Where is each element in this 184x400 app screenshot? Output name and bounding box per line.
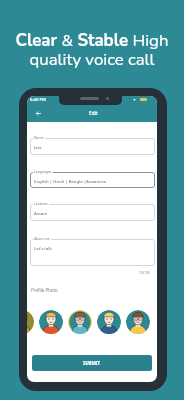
button[interactable]: Avatar 2 [39,310,63,334]
button[interactable] [30,204,155,221]
staticText: English | Hindi | Bangla |Assamese [34,178,107,184]
button[interactable]: Back [27,105,49,122]
button[interactable]: SUBMIT [32,355,152,371]
staticText: Clear & Stable High quality voice call [6,29,178,71]
staticText: Let's talk [34,245,52,251]
staticText: Jeet [34,144,42,150]
staticText: About me [34,236,50,241]
staticText: Name [34,135,44,140]
staticText: 10/100 [139,270,150,275]
button[interactable]: Avatar 3 [68,310,92,334]
staticText: SUBMIT [83,360,101,366]
staticText: Profile Photo [31,287,58,293]
staticText: 6:40 PM [30,97,46,103]
button[interactable]: Avatar 5 [126,310,150,334]
staticText: Languages [34,169,52,174]
button[interactable]: Avatar 4 [97,310,121,334]
button[interactable]: Avatar 1 [27,310,34,334]
staticText: Assam [34,210,48,216]
staticText: Edit [89,110,98,117]
button[interactable] [30,172,155,188]
button[interactable] [30,239,155,266]
button[interactable] [30,138,155,155]
staticText: Location [34,201,48,206]
